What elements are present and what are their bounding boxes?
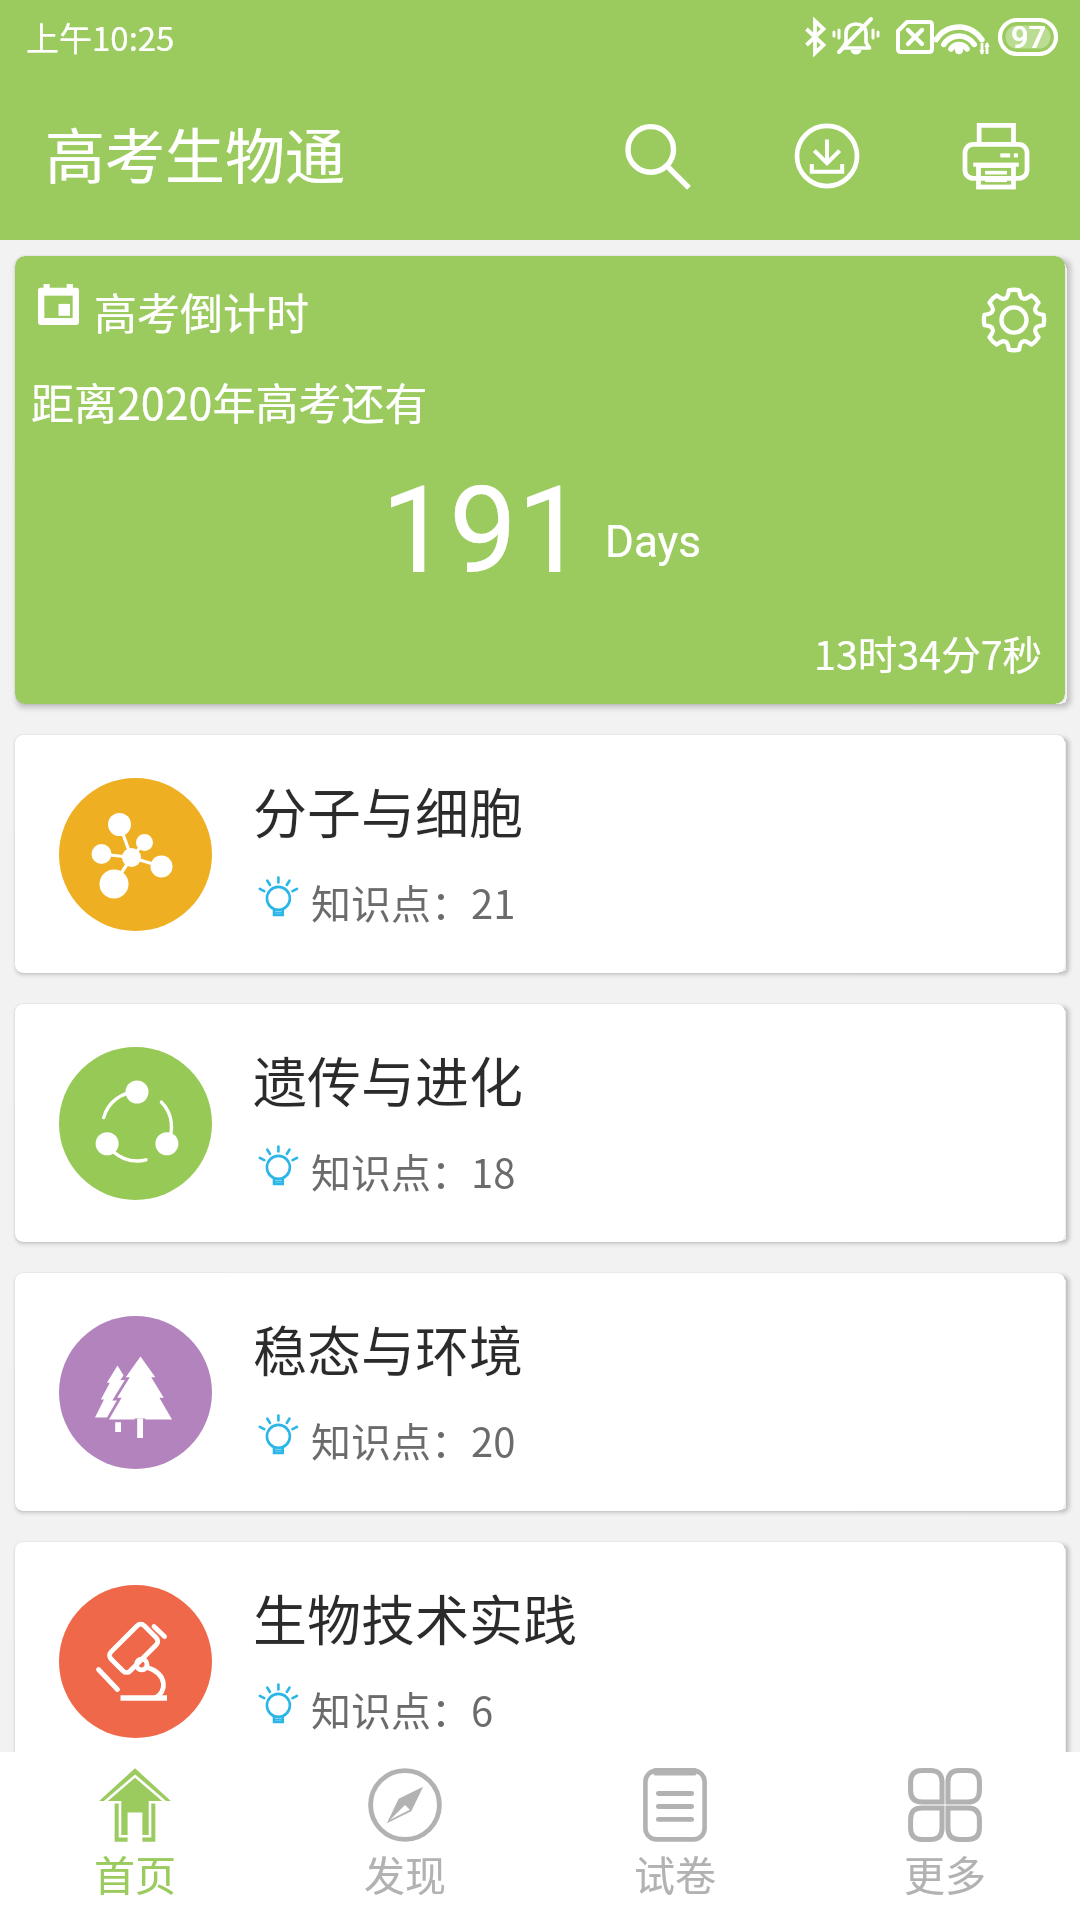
staticText: 遗传与进化: [253, 1040, 523, 1118]
staticText: 知识点：21: [311, 873, 516, 931]
staticText: 97: [1011, 19, 1047, 55]
staticText: 上午10:25: [26, 13, 175, 61]
staticText: 高考生物通: [45, 109, 345, 196]
button[interactable]: 首页: [0, 1752, 270, 1920]
staticText: 发现: [364, 1843, 446, 1902]
button[interactable]: 稳态与环境: [15, 1273, 1065, 1511]
staticText: 首页: [94, 1843, 176, 1902]
button[interactable]: Download: [767, 96, 887, 216]
staticText: Days: [605, 516, 702, 568]
button[interactable]: Print: [936, 96, 1056, 216]
staticText: 知识点：18: [311, 1142, 516, 1200]
staticText: 知识点：20: [311, 1411, 516, 1469]
staticText: 距离2020年高考还有: [31, 370, 428, 432]
button[interactable]: 生物技术实践: [15, 1542, 1065, 1780]
button[interactable]: 发现: [270, 1752, 540, 1920]
staticText: 高考倒计时: [94, 280, 309, 342]
staticText: 分子与细胞: [253, 771, 523, 849]
button[interactable]: 更多: [810, 1752, 1080, 1920]
staticText: 试卷: [634, 1843, 716, 1902]
staticText: 生物技术实践: [253, 1578, 577, 1656]
staticText: 191: [381, 460, 586, 602]
button[interactable]: Search: [597, 96, 717, 216]
button[interactable]: 分子与细胞: [15, 735, 1065, 973]
staticText: 稳态与环境: [253, 1309, 523, 1387]
button[interactable]: 遗传与进化: [15, 1004, 1065, 1242]
button[interactable]: Settings: [981, 287, 1047, 353]
button[interactable]: 试卷: [540, 1752, 810, 1920]
staticText: 更多: [904, 1843, 986, 1902]
staticText: 13时34分7秒: [814, 624, 1043, 681]
button[interactable]: 高考倒计时: [15, 256, 1065, 704]
staticText: 知识点：6: [311, 1680, 494, 1738]
